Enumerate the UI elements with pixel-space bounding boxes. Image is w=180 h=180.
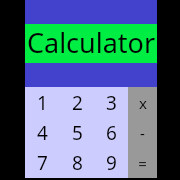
button[interactable]: 3 [94,87,128,118]
button[interactable]: x [128,87,157,118]
staticText: Calculator! [25,24,157,63]
staticText: = [138,153,147,173]
button[interactable]: = [128,148,157,178]
button[interactable]: 6 [94,118,128,148]
button[interactable]: Calculator! [25,24,157,63]
staticText: 1 [37,90,48,116]
staticText: 4 [37,120,48,146]
button[interactable]: 8 [60,148,94,178]
staticText: 5 [72,120,83,146]
button[interactable]: 5 [60,118,94,148]
staticText: 2 [72,90,83,116]
staticText: 8 [72,150,83,176]
staticText: 9 [106,150,117,176]
button[interactable]: - [128,118,157,148]
staticText: x [139,93,147,113]
button[interactable]: 9 [94,148,128,178]
button[interactable]: 1 [25,87,60,118]
staticText: 6 [106,120,117,146]
button[interactable]: 7 [25,148,60,178]
button[interactable]: 4 [25,118,60,148]
staticText: 7 [37,150,48,176]
staticText: 3 [106,90,117,116]
button[interactable]: 2 [60,87,94,118]
staticText: - [140,123,145,143]
